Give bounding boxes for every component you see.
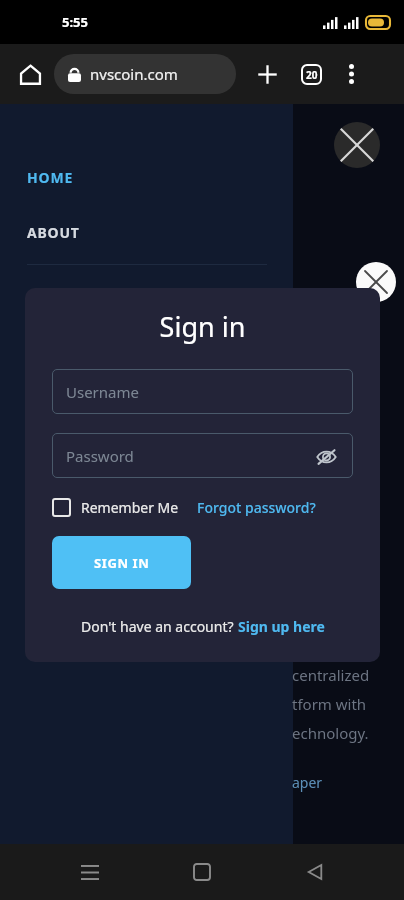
button[interactable]: Sign up here	[238, 617, 325, 636]
button[interactable]: Forgot password?	[197, 498, 316, 517]
button[interactable]: SIGN IN	[52, 536, 191, 589]
button[interactable]: Tabs: 20	[294, 57, 328, 91]
button[interactable]: Remember Me	[52, 498, 179, 517]
staticText: tform with	[292, 694, 367, 714]
button[interactable]: HOME	[27, 158, 293, 197]
button[interactable]: Home	[179, 849, 225, 895]
button[interactable]: Recent apps	[67, 849, 113, 895]
button[interactable]: Show password	[313, 443, 339, 469]
staticText: Forgot password?	[197, 498, 316, 517]
button[interactable]: FEATURES	[27, 279, 293, 318]
button[interactable]: Home	[12, 56, 48, 92]
staticText: aper	[292, 773, 323, 792]
button[interactable]: Back	[292, 849, 338, 895]
button[interactable]: More options	[336, 59, 366, 89]
button[interactable]: New tab	[250, 57, 284, 91]
staticText: centralized	[292, 665, 370, 685]
staticText: ABOUT	[27, 223, 80, 242]
staticText: 5:55	[62, 13, 88, 31]
staticText: Sign in	[52, 308, 353, 345]
button[interactable]: ABOUT	[27, 213, 293, 252]
staticText: HOME	[27, 168, 74, 187]
staticText: Remember Me	[81, 498, 179, 517]
staticText: SIGN IN	[94, 554, 150, 572]
button[interactable]: Close dialog	[356, 262, 396, 302]
button[interactable]: Password	[52, 433, 353, 478]
staticText: Password	[66, 446, 313, 466]
button[interactable]: Username	[52, 369, 353, 414]
staticText: Username	[66, 382, 339, 402]
staticText: Don't have an account?	[81, 617, 238, 636]
staticText: echnology.	[292, 723, 369, 743]
staticText: nvscoin.com	[90, 64, 178, 84]
button[interactable]: nvscoin.com	[54, 54, 236, 94]
button[interactable]: Close menu	[334, 122, 380, 168]
staticText: Sign up here	[238, 617, 325, 636]
staticText: 20	[306, 68, 318, 82]
